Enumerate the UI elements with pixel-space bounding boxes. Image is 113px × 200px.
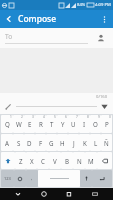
staticText: 5 xyxy=(54,115,56,119)
button[interactable]: M xyxy=(85,152,97,169)
staticText: T xyxy=(50,120,54,128)
staticText: M xyxy=(88,157,94,165)
staticText: Q xyxy=(5,120,10,128)
button[interactable]: Backspace xyxy=(97,152,112,169)
staticText: S xyxy=(17,139,21,147)
staticText: 4 xyxy=(43,115,45,119)
staticText: O xyxy=(93,120,98,128)
button[interactable]: Attach xyxy=(3,101,14,112)
staticText: 1 xyxy=(10,115,12,119)
staticText: 0 xyxy=(109,115,111,119)
staticText: V xyxy=(53,157,57,165)
button[interactable]: Shift xyxy=(1,152,15,169)
staticText: Z xyxy=(19,157,23,165)
button[interactable]: Symbols xyxy=(1,170,14,187)
staticText: X xyxy=(30,157,34,165)
button[interactable]: D xyxy=(24,134,35,151)
staticText: U xyxy=(71,120,76,128)
button[interactable]: Back xyxy=(11,188,25,200)
button[interactable]: 5 xyxy=(46,115,57,133)
button[interactable]: Send xyxy=(99,101,110,112)
button[interactable]: Comma xyxy=(26,170,38,187)
button[interactable]: G xyxy=(46,134,57,151)
staticText: Compose xyxy=(18,13,57,25)
button[interactable]: V xyxy=(49,152,61,169)
staticText: 84% xyxy=(77,2,86,8)
staticText: 4:09 PM xyxy=(95,2,111,8)
staticText: F xyxy=(39,139,43,147)
staticText: I xyxy=(83,120,86,128)
staticText: 3 xyxy=(32,115,34,119)
button[interactable]: 8 xyxy=(79,115,90,133)
button[interactable]: S xyxy=(13,134,24,151)
button[interactable]: Recents xyxy=(62,188,76,200)
button[interactable]: Keyboard xyxy=(88,188,102,200)
staticText: B xyxy=(65,157,70,165)
staticText: 123 xyxy=(4,176,11,181)
button[interactable]: Emoji xyxy=(14,170,26,187)
staticText: Ñ xyxy=(104,139,109,147)
button[interactable]: Voice input xyxy=(80,170,92,187)
staticText: P xyxy=(105,120,109,128)
staticText: D xyxy=(27,139,32,147)
staticText: W xyxy=(16,120,22,128)
button[interactable]: Add contact xyxy=(94,31,108,45)
button[interactable]: 9 xyxy=(90,115,101,133)
staticText: K xyxy=(83,139,87,147)
button[interactable]: K xyxy=(79,134,90,151)
button[interactable]: 0 xyxy=(101,115,112,133)
button[interactable]: Home xyxy=(37,188,51,200)
button[interactable]: 6 xyxy=(57,115,68,133)
staticText: 2 xyxy=(21,115,23,119)
staticText: H xyxy=(60,139,65,147)
staticText: 7 xyxy=(76,115,78,119)
button[interactable]: A xyxy=(1,134,13,151)
button[interactable]: More options xyxy=(95,10,113,28)
staticText: 0/160 xyxy=(96,94,108,100)
button[interactable]: Space xyxy=(38,170,80,187)
button[interactable]: 2 xyxy=(13,115,24,133)
button[interactable]: N xyxy=(73,152,85,169)
button[interactable]: L xyxy=(90,134,101,151)
staticText: 9 xyxy=(98,115,100,119)
staticText: E xyxy=(28,120,32,128)
staticText: C xyxy=(41,157,45,165)
button[interactable]: H xyxy=(57,134,68,151)
staticText: N xyxy=(77,157,82,165)
button[interactable]: Ñ xyxy=(101,134,112,151)
button[interactable]: C xyxy=(37,152,49,169)
button[interactable]: Enter xyxy=(92,170,112,187)
button[interactable]: J xyxy=(68,134,79,151)
button[interactable]: 4 xyxy=(35,115,46,133)
button[interactable]: 7 xyxy=(68,115,79,133)
staticText: 6 xyxy=(65,115,67,119)
staticText: L xyxy=(94,139,98,147)
staticText: 8 xyxy=(87,115,89,119)
staticText: A xyxy=(5,139,9,147)
staticText: , xyxy=(31,175,33,182)
staticText: R xyxy=(39,120,43,128)
staticText: Y xyxy=(61,120,65,128)
button[interactable]: 3 xyxy=(24,115,35,133)
button[interactable]: X xyxy=(26,152,37,169)
staticText: G xyxy=(49,139,54,147)
button[interactable]: B xyxy=(61,152,73,169)
button[interactable]: 1 xyxy=(1,115,13,133)
staticText: To xyxy=(5,32,13,41)
button[interactable]: Z xyxy=(15,152,26,169)
button[interactable]: Back xyxy=(0,10,18,28)
button[interactable]: F xyxy=(35,134,46,151)
staticText: J xyxy=(73,139,75,147)
